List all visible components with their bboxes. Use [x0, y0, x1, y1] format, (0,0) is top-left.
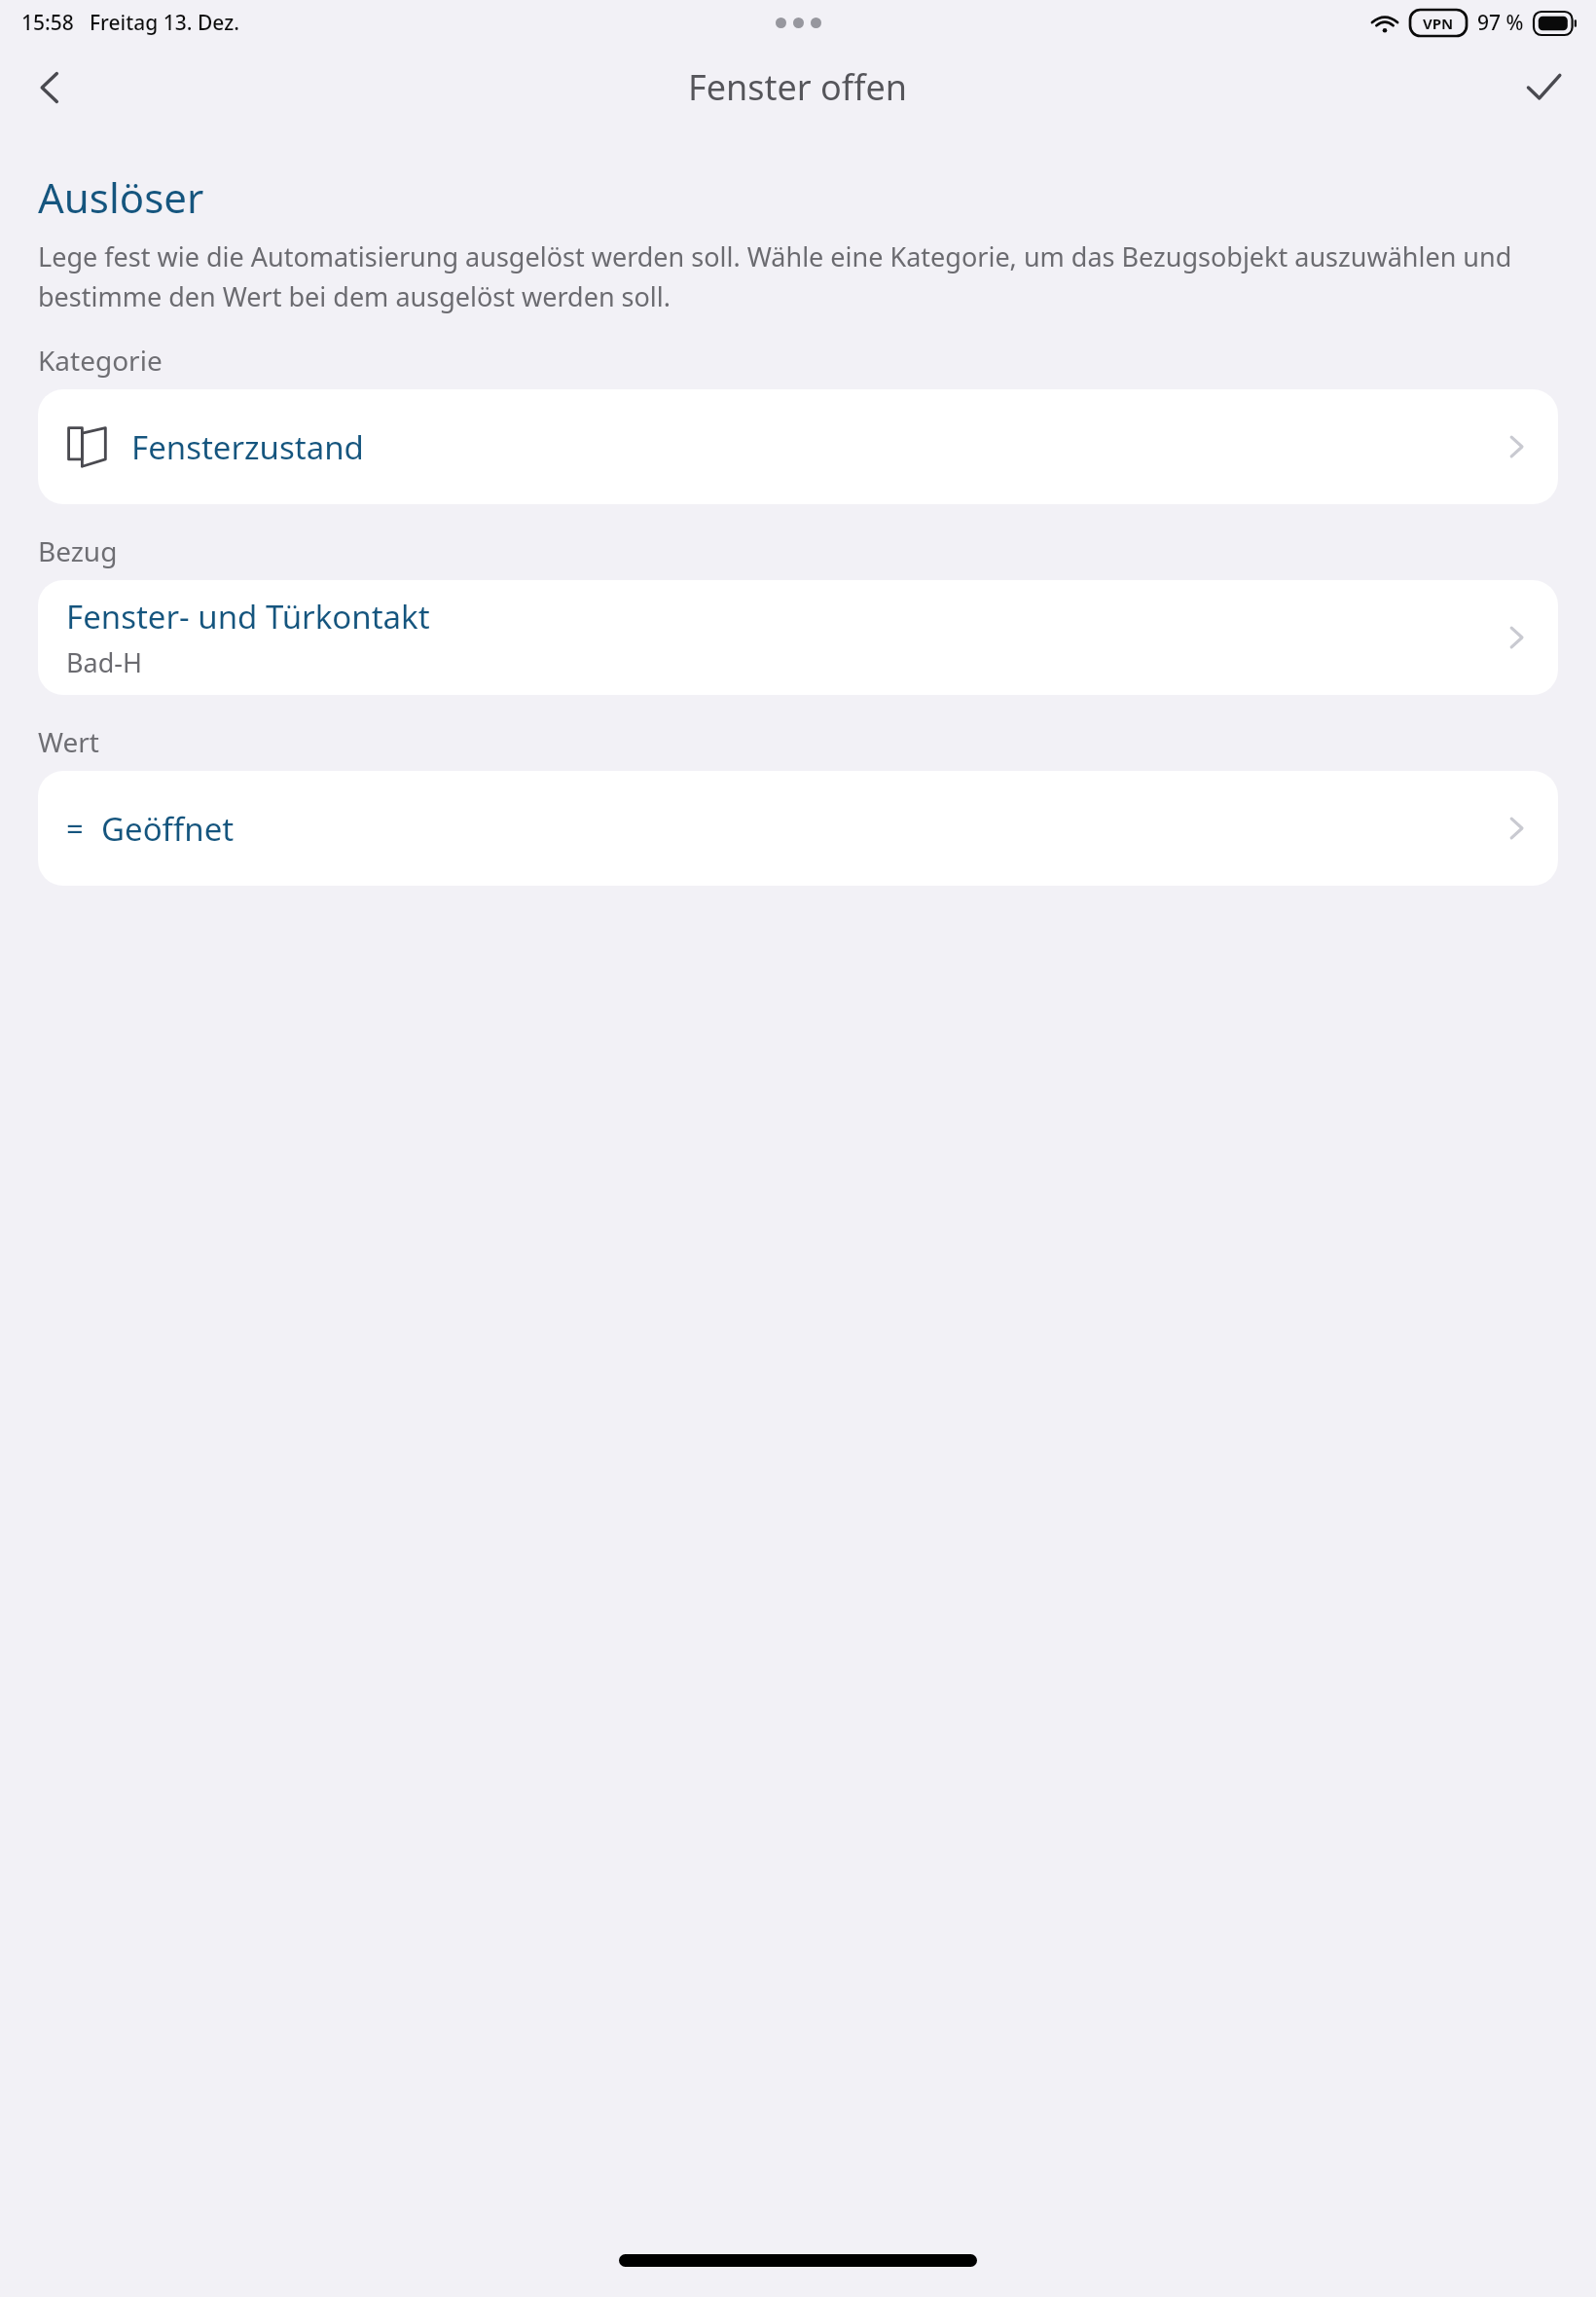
button[interactable]: =	[38, 771, 1558, 886]
staticText: Geöffnet	[101, 807, 235, 851]
button[interactable]: Fensterzustand	[38, 389, 1558, 504]
button[interactable]: Zurück	[10, 47, 91, 128]
staticText: =	[66, 808, 84, 849]
staticText: Fenster- und Türkontakt	[66, 595, 430, 638]
button[interactable]: Fertig	[1503, 47, 1584, 128]
staticText: Fenster offen	[688, 63, 908, 111]
staticText: VPN	[1423, 14, 1454, 33]
staticText: Lege fest wie die Automatisierung ausgel…	[38, 238, 1558, 314]
staticText: Bad-H	[66, 644, 143, 680]
staticText: 97 %	[1477, 9, 1524, 37]
staticText: Fensterzustand	[131, 425, 364, 469]
staticText: Auslöser	[38, 169, 204, 225]
staticText: 15:58	[21, 9, 74, 37]
button[interactable]: Fenster- und Türkontakt	[38, 580, 1558, 695]
staticText: Wert	[38, 723, 99, 760]
staticText: Bezug	[38, 532, 118, 569]
staticText: Freitag 13. Dez.	[90, 9, 239, 37]
staticText: Kategorie	[38, 342, 163, 379]
